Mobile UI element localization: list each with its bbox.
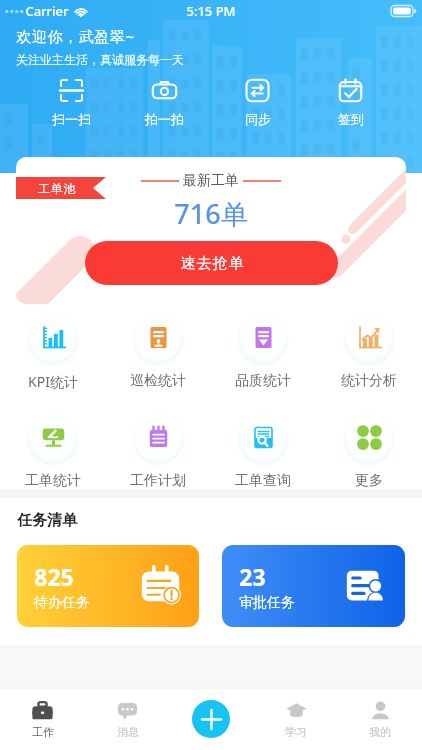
staticText: 716单	[174, 195, 248, 232]
button[interactable]: 速去抢单	[85, 241, 338, 285]
button[interactable]: Add	[192, 700, 230, 738]
staticText: 扫一扫	[52, 111, 91, 127]
staticText: 工单统计	[25, 472, 81, 489]
staticText: 学习	[285, 725, 307, 739]
button[interactable]: 23	[222, 545, 405, 627]
staticText: 消息	[117, 725, 139, 739]
staticText: 审批任务	[239, 594, 295, 612]
button[interactable]: 消息	[85, 688, 170, 750]
staticText: 最新工单	[183, 172, 239, 190]
staticText: 更多	[355, 472, 383, 489]
staticText: 工单查询	[235, 472, 291, 489]
staticText: 23	[239, 561, 266, 592]
staticText: 5:15 PM	[186, 2, 236, 20]
button[interactable]: 签到	[304, 78, 397, 127]
button[interactable]: 品质统计	[210, 310, 316, 390]
staticText: 拍一拍	[145, 111, 184, 127]
staticText: 待办任务	[34, 594, 90, 612]
staticText: 我的	[369, 725, 391, 739]
button[interactable]: 工单查询	[210, 410, 316, 489]
staticText: 任务清单	[17, 511, 77, 530]
staticText: 签到	[338, 111, 364, 127]
staticText: 速去抢单	[180, 254, 244, 273]
button[interactable]: 统计分析	[316, 310, 422, 390]
button[interactable]: 更多	[316, 410, 422, 489]
staticText: Carrier	[25, 2, 69, 20]
staticText: 工单池	[38, 181, 76, 196]
staticText: 巡检统计	[130, 372, 186, 390]
button[interactable]: 我的	[338, 688, 422, 750]
button[interactable]: 工作计划	[105, 410, 210, 489]
button[interactable]: 拍一拍	[118, 78, 211, 127]
button[interactable]: 学习	[254, 688, 338, 750]
button[interactable]: 巡检统计	[105, 310, 210, 390]
staticText: 欢迎你，武盈翠~	[16, 26, 135, 46]
button[interactable]: 工单统计	[0, 410, 105, 489]
staticText: 825	[34, 561, 74, 592]
button[interactable]: 扫一扫	[25, 78, 118, 127]
staticText: 统计分析	[341, 372, 397, 390]
staticText: 关注业主生活，真诚服务每一天	[16, 52, 184, 67]
staticText: 工作计划	[130, 472, 186, 489]
staticText: 工作	[32, 725, 54, 739]
button[interactable]: 工作	[0, 688, 85, 750]
staticText: KPI统计	[28, 372, 78, 391]
staticText: 品质统计	[235, 372, 291, 390]
button[interactable]: 同步	[211, 78, 304, 127]
button[interactable]: 825	[17, 545, 199, 627]
staticText: 同步	[245, 111, 271, 127]
button[interactable]: KPI统计	[0, 310, 105, 391]
